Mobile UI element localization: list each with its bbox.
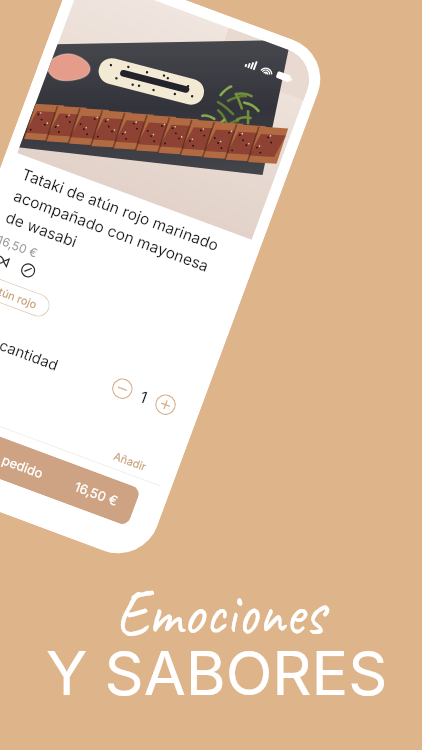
staticText: 16,50 € bbox=[0, 232, 40, 261]
staticText: 16,50 € bbox=[72, 478, 120, 509]
button[interactable]: Añadir al pedido bbox=[0, 414, 141, 526]
button[interactable]: Increase quantity bbox=[152, 391, 179, 418]
staticText: 1 bbox=[137, 387, 151, 407]
staticText: Y SABORES bbox=[46, 636, 388, 710]
staticText: Emociones bbox=[116, 571, 324, 654]
staticText: Añadir al pedido bbox=[0, 431, 46, 481]
staticText: Tataki de atún rojo marinado acompañado … bbox=[3, 165, 222, 298]
staticText: Añadir bbox=[112, 449, 148, 473]
button[interactable]: Decrease quantity bbox=[109, 375, 136, 402]
button[interactable]: atún rojo bbox=[0, 273, 53, 320]
staticText: atún rojo bbox=[0, 283, 39, 311]
staticText: Elige cantidad bbox=[0, 322, 61, 374]
